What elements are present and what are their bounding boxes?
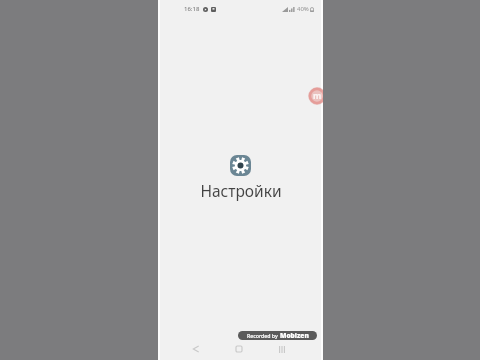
staticText: m <box>313 90 322 102</box>
button[interactable]: Back <box>185 338 207 360</box>
staticText: 40% <box>297 5 309 13</box>
button[interactable]: Recent apps <box>271 338 293 360</box>
staticText: Recorded by <box>247 332 280 339</box>
staticText: Mobizen <box>280 331 309 340</box>
button[interactable]: Настройки <box>230 155 251 176</box>
staticText: 16:18 <box>184 5 200 13</box>
button[interactable]: Home <box>228 338 250 360</box>
button[interactable]: Mobizen recorder <box>308 87 323 105</box>
staticText: Настройки <box>200 180 282 201</box>
